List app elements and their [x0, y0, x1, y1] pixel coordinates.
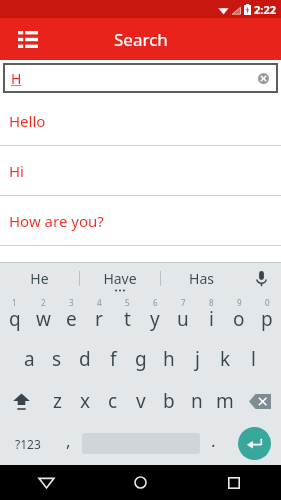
- button[interactable]: 0: [253, 294, 281, 338]
- button[interactable]: He: [0, 263, 79, 294]
- button[interactable]: Has: [161, 263, 241, 294]
- button[interactable]: 9: [225, 294, 253, 338]
- staticText: c: [108, 388, 118, 414]
- staticText: n: [191, 388, 203, 414]
- staticText: d: [79, 346, 91, 372]
- button[interactable]: 2: [29, 294, 57, 338]
- button[interactable]: Recent apps: [187, 465, 281, 500]
- staticText: 8: [209, 297, 214, 308]
- staticText: Search: [114, 28, 168, 51]
- staticText: 5: [125, 297, 130, 308]
- button[interactable]: z: [43, 380, 71, 422]
- staticText: j: [195, 346, 200, 372]
- button[interactable]: .: [200, 422, 227, 465]
- staticText: k: [220, 346, 231, 372]
- button[interactable]: b: [155, 380, 183, 422]
- button[interactable]: d: [71, 338, 99, 380]
- staticText: 0: [265, 297, 270, 308]
- button[interactable]: 5: [113, 294, 141, 338]
- staticText: m: [216, 388, 234, 414]
- staticText: h: [163, 346, 175, 372]
- button[interactable]: h: [155, 338, 183, 380]
- staticText: f: [110, 346, 117, 372]
- button[interactable]: c: [99, 380, 127, 422]
- button[interactable]: l: [239, 338, 267, 380]
- button[interactable]: H: [3, 63, 278, 93]
- staticText: t: [124, 306, 131, 332]
- button[interactable]: Hi: [0, 146, 281, 195]
- button[interactable]: Back: [0, 465, 93, 500]
- staticText: 9: [237, 297, 242, 308]
- button[interactable]: Clear search: [254, 69, 272, 87]
- staticText: 3: [69, 297, 74, 308]
- button[interactable]: m: [211, 380, 239, 422]
- staticText: How are you?: [9, 211, 104, 231]
- button[interactable]: Shift: [0, 380, 43, 422]
- button[interactable]: Voice input: [241, 263, 281, 294]
- button[interactable]: 7: [169, 294, 197, 338]
- staticText: e: [66, 306, 77, 332]
- staticText: 7: [181, 297, 186, 308]
- staticText: ?123: [15, 436, 41, 452]
- staticText: Hello: [9, 111, 46, 131]
- staticText: l: [251, 346, 256, 372]
- button[interactable]: Backspace: [239, 380, 281, 422]
- button[interactable]: ,: [55, 422, 82, 465]
- button[interactable]: 3: [57, 294, 85, 338]
- button[interactable]: f: [99, 338, 127, 380]
- button[interactable]: How are you?: [0, 196, 281, 245]
- button[interactable]: g: [127, 338, 155, 380]
- staticText: i: [209, 306, 214, 332]
- button[interactable]: Home: [93, 465, 187, 500]
- staticText: Has: [189, 269, 214, 288]
- staticText: Hi: [9, 161, 24, 181]
- button[interactable]: k: [211, 338, 239, 380]
- staticText: z: [53, 388, 62, 414]
- button[interactable]: s: [43, 338, 71, 380]
- staticText: H: [11, 69, 22, 88]
- button[interactable]: Open navigation menu: [8, 19, 48, 59]
- button[interactable]: a: [15, 338, 43, 380]
- button[interactable]: 4: [85, 294, 113, 338]
- staticText: 2: [41, 297, 46, 308]
- button[interactable]: j: [183, 338, 211, 380]
- staticText: Have: [103, 269, 137, 288]
- button[interactable]: x: [71, 380, 99, 422]
- staticText: u: [177, 306, 189, 332]
- button[interactable]: 6: [141, 294, 169, 338]
- staticText: a: [24, 346, 35, 372]
- staticText: o: [233, 306, 245, 332]
- staticText: ,: [66, 429, 71, 452]
- button[interactable]: Enter: [238, 427, 271, 460]
- button[interactable]: Have: [80, 263, 160, 294]
- staticText: r: [95, 306, 103, 332]
- staticText: 2:22: [254, 2, 276, 17]
- staticText: v: [136, 388, 146, 414]
- button[interactable]: n: [183, 380, 211, 422]
- staticText: .: [211, 429, 216, 452]
- staticText: 1: [12, 297, 17, 308]
- staticText: He: [30, 269, 49, 288]
- button[interactable]: ?123: [0, 422, 55, 465]
- staticText: g: [135, 346, 147, 372]
- button[interactable]: 8: [197, 294, 225, 338]
- staticText: w: [36, 306, 51, 332]
- staticText: s: [52, 346, 62, 372]
- button[interactable]: Hello: [0, 96, 281, 145]
- staticText: y: [150, 306, 160, 332]
- staticText: 6: [153, 297, 158, 308]
- staticText: p: [261, 306, 273, 332]
- button[interactable]: 1: [0, 294, 29, 338]
- staticText: 4: [97, 297, 102, 308]
- staticText: q: [9, 306, 21, 332]
- staticText: b: [163, 388, 175, 414]
- staticText: x: [80, 388, 91, 414]
- button[interactable]: v: [127, 380, 155, 422]
